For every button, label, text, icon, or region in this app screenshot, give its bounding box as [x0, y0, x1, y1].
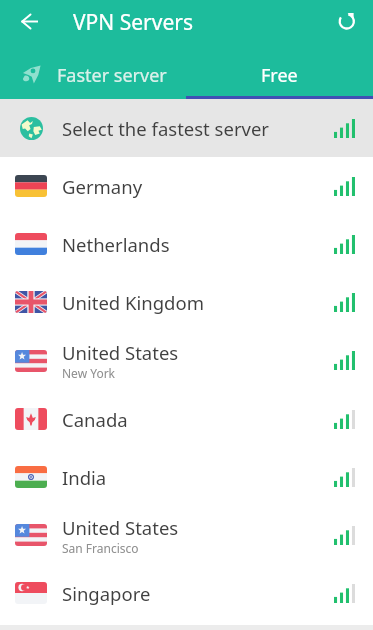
- staticText: Netherlands: [62, 232, 170, 257]
- staticText: Germany: [62, 174, 143, 199]
- staticText: Singapore: [62, 581, 151, 606]
- button[interactable]: Back: [9, 1, 49, 41]
- staticText: India: [62, 465, 107, 490]
- button[interactable]: United States: [0, 331, 373, 390]
- button[interactable]: Select the fastest server: [0, 99, 373, 157]
- staticText: San Francisco: [62, 540, 139, 556]
- button[interactable]: Netherlands: [0, 215, 373, 273]
- staticText: New York: [62, 365, 116, 381]
- staticText: United States: [62, 515, 179, 540]
- button[interactable]: Free: [186, 54, 373, 96]
- button[interactable]: United Kingdom: [0, 273, 373, 331]
- staticText: United States: [62, 340, 179, 365]
- button[interactable]: Singapore: [0, 564, 373, 622]
- button[interactable]: Canada: [0, 390, 373, 448]
- staticText: Select the fastest server: [62, 116, 269, 141]
- button[interactable]: Faster server: [0, 54, 186, 96]
- button[interactable]: Refresh: [328, 0, 368, 40]
- staticText: Canada: [62, 407, 128, 432]
- staticText: United Kingdom: [62, 290, 204, 315]
- staticText: Faster server: [57, 63, 167, 88]
- button[interactable]: Germany: [0, 157, 373, 215]
- staticText: Free: [261, 63, 298, 88]
- button[interactable]: India: [0, 448, 373, 506]
- staticText: VPN Servers: [73, 8, 194, 37]
- button[interactable]: United States: [0, 506, 373, 564]
